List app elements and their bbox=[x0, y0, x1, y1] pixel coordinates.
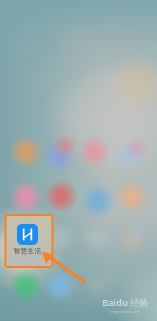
staticText: 智慧生活 bbox=[13, 247, 41, 255]
staticText: Baidu 经验 bbox=[102, 296, 148, 309]
staticText: jingyan.baidu.com bbox=[109, 309, 140, 314]
